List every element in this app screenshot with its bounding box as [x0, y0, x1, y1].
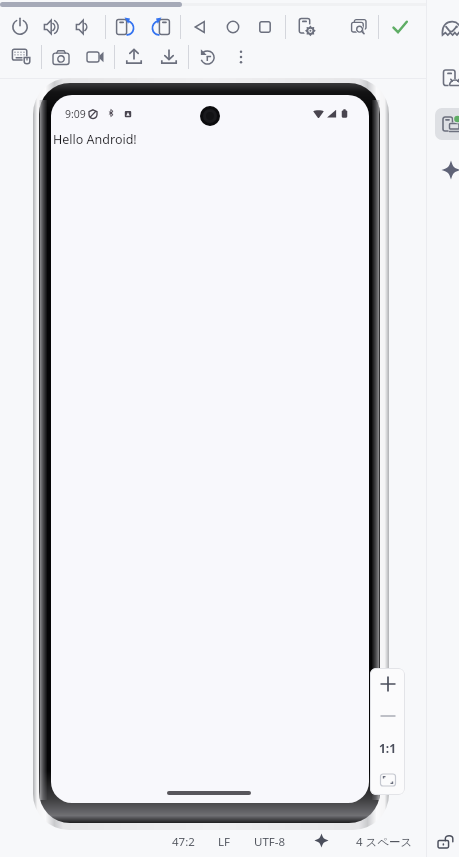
button[interactable]: Power: [7, 14, 33, 40]
button[interactable]: UTF-8: [254, 834, 286, 850]
staticText: UTF-8: [254, 834, 286, 850]
staticText: LF: [218, 834, 230, 850]
staticText: 9:09: [65, 107, 86, 121]
staticText: 4 スペース: [356, 834, 413, 850]
button[interactable]: Overview: [252, 14, 278, 40]
button[interactable]: Zoom out: [372, 700, 404, 732]
button[interactable]: Record screen: [82, 44, 108, 70]
button[interactable]: Gemini: [313, 832, 330, 849]
button[interactable]: Volume up: [39, 14, 65, 40]
button[interactable]: Screenshot: [48, 44, 74, 70]
button[interactable]: Gemini: [435, 154, 459, 186]
button[interactable]: Download: [156, 44, 182, 70]
button[interactable]: Volume down: [71, 14, 97, 40]
button[interactable]: 4 スペース: [356, 834, 413, 850]
button[interactable]: 1:1: [372, 732, 404, 764]
button[interactable]: Lock: [437, 832, 454, 849]
button[interactable]: Accept: [387, 14, 413, 40]
button[interactable]: LF: [218, 834, 230, 850]
button[interactable]: Device Manager: [435, 62, 459, 94]
button[interactable]: Hardware input: [9, 44, 35, 70]
staticText: 47:2: [172, 834, 195, 850]
button[interactable]: Home: [220, 14, 246, 40]
button[interactable]: Gradle: [435, 14, 459, 46]
staticText: 1:1: [379, 740, 397, 756]
staticText: Hello Android!: [53, 131, 137, 148]
button[interactable]: Back: [187, 14, 213, 40]
button[interactable]: 47:2: [172, 834, 195, 850]
button[interactable]: More: [228, 44, 254, 70]
button[interactable]: History: [194, 44, 220, 70]
button[interactable]: Layout inspector: [346, 14, 372, 40]
button[interactable]: Device settings: [294, 14, 320, 40]
button[interactable]: Running Devices: [435, 108, 459, 140]
button[interactable]: Rotate left: [113, 14, 139, 40]
button[interactable]: Zoom in: [372, 668, 404, 700]
button[interactable]: Upload: [121, 44, 147, 70]
button[interactable]: Fit to screen: [372, 764, 404, 795]
button[interactable]: Rotate right: [147, 14, 173, 40]
